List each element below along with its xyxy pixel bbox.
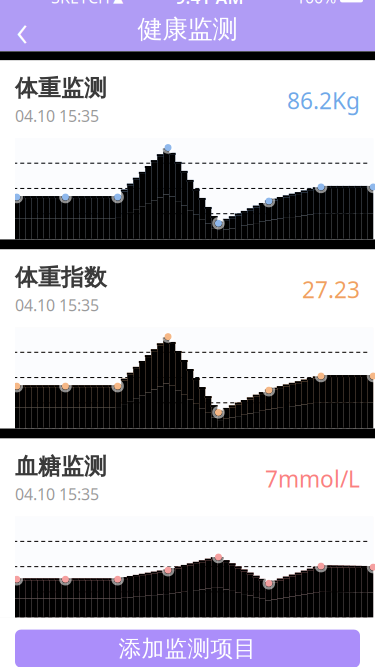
staticText: 86.2Kg	[287, 85, 360, 115]
staticText: ‹	[16, 0, 28, 59]
staticText: 04.10 15:35	[15, 294, 99, 315]
staticText: 体重监测	[15, 74, 107, 102]
staticText: 添加监测项目	[118, 635, 256, 662]
staticText: 7mmol/L	[265, 463, 360, 494]
staticText: 27.23	[302, 274, 360, 304]
staticText: 9:41 AM	[175, 0, 243, 9]
staticText: 体重指数	[15, 263, 107, 291]
staticText: ▲	[113, 0, 123, 5]
staticText: 健康监测	[137, 14, 237, 45]
button[interactable]: 添加监测项目	[15, 630, 360, 667]
staticText: SKETCH	[51, 0, 110, 8]
button[interactable]: Back	[0, 7, 44, 51]
staticText: 04.10 15:35	[15, 483, 99, 505]
staticText: 100%	[296, 0, 336, 8]
staticText: 血糖监测	[15, 452, 107, 480]
staticText: 04.10 15:35	[15, 105, 99, 126]
